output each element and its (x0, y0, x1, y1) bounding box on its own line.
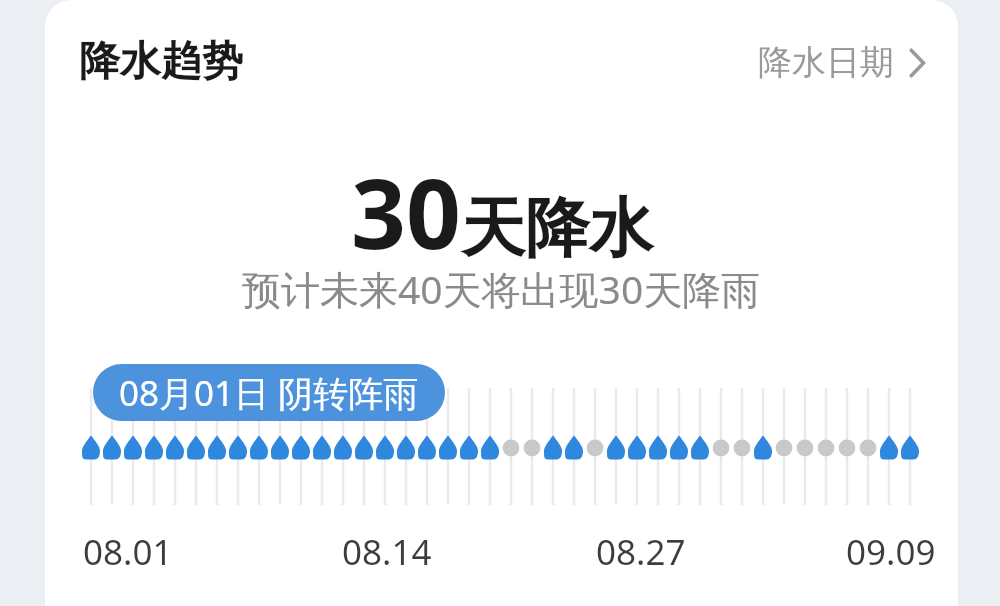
staticText: 天降水 (461, 188, 653, 269)
staticText: 08.27 (596, 528, 686, 576)
staticText: 09.09 (846, 528, 936, 576)
staticText: 08月01日 阴转阵雨 (119, 369, 419, 417)
button[interactable]: Precipitation chart for 40 days (45, 0, 958, 606)
staticText: 预计未来40天将出现30天降雨 (242, 262, 761, 315)
staticText: 降水趋势 (79, 36, 243, 88)
staticText: 降水日期 (758, 41, 894, 84)
staticText: 08.14 (342, 528, 432, 576)
staticText: 08.01 (83, 528, 173, 576)
button[interactable]: 降水趋势 (79, 36, 243, 88)
button[interactable]: 08月01日 阴转阵雨 (93, 364, 445, 421)
button[interactable]: 降水日期 (758, 41, 926, 84)
staticText: 30 (351, 146, 461, 277)
